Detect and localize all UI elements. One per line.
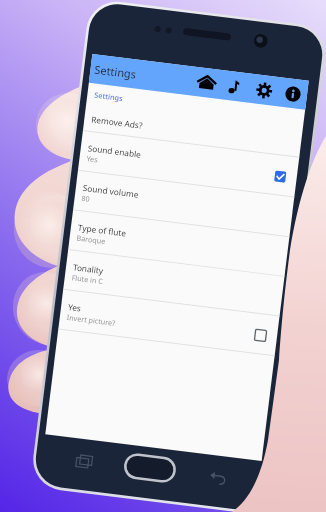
button[interactable]: Type of flute xyxy=(68,211,289,277)
button[interactable]: Toggle xyxy=(252,327,268,343)
staticText: Yes xyxy=(67,301,82,313)
staticText: Type of flute xyxy=(77,222,127,238)
staticText: Remove Ads? xyxy=(91,113,144,131)
button[interactable]: Toggle xyxy=(272,168,288,184)
staticText: Invert picture? xyxy=(66,312,116,328)
button[interactable]: Music xyxy=(219,70,251,102)
button[interactable]: Home xyxy=(190,67,222,99)
staticText: Sound volume xyxy=(82,182,140,200)
button[interactable]: Sound volume xyxy=(73,171,294,238)
staticText: Settings xyxy=(94,90,124,103)
staticText: 80 xyxy=(81,193,91,204)
button[interactable]: Sound enable xyxy=(78,131,299,198)
staticText: Flute in C xyxy=(71,272,104,286)
button[interactable]: Remove Ads? xyxy=(83,104,303,158)
staticText: Sound enable xyxy=(87,142,142,160)
button[interactable]: Tonality xyxy=(63,250,284,317)
button[interactable]: Info xyxy=(276,77,309,110)
staticText: Yes xyxy=(86,153,99,164)
staticText: Settings xyxy=(94,61,137,82)
staticText: Baroque xyxy=(76,232,106,246)
staticText: Tonality xyxy=(72,261,104,276)
button[interactable]: Yes xyxy=(58,290,279,357)
button[interactable]: Settings xyxy=(248,74,280,106)
